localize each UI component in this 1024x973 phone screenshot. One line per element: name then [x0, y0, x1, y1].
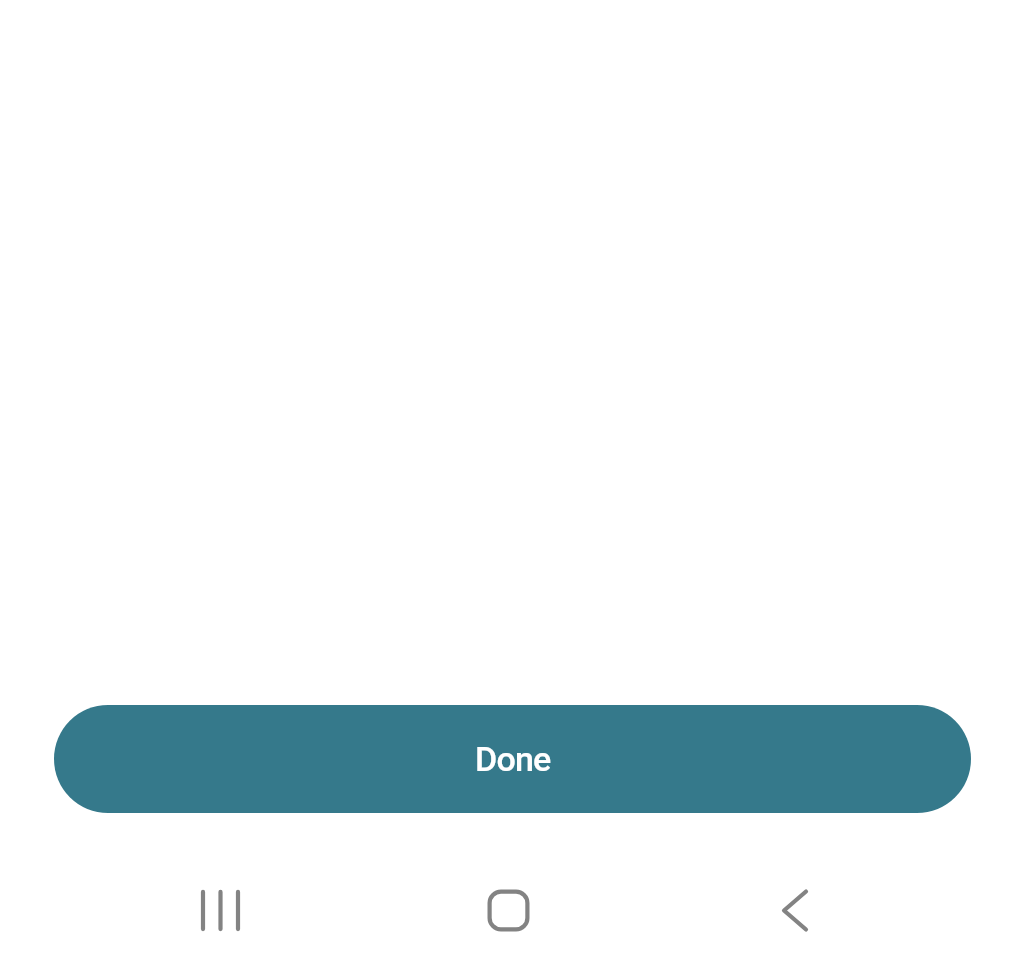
staticText: Done: [475, 739, 551, 779]
button[interactable]: [478, 880, 539, 941]
button[interactable]: [190, 880, 251, 941]
button[interactable]: Done: [54, 705, 971, 813]
button[interactable]: [764, 880, 825, 941]
